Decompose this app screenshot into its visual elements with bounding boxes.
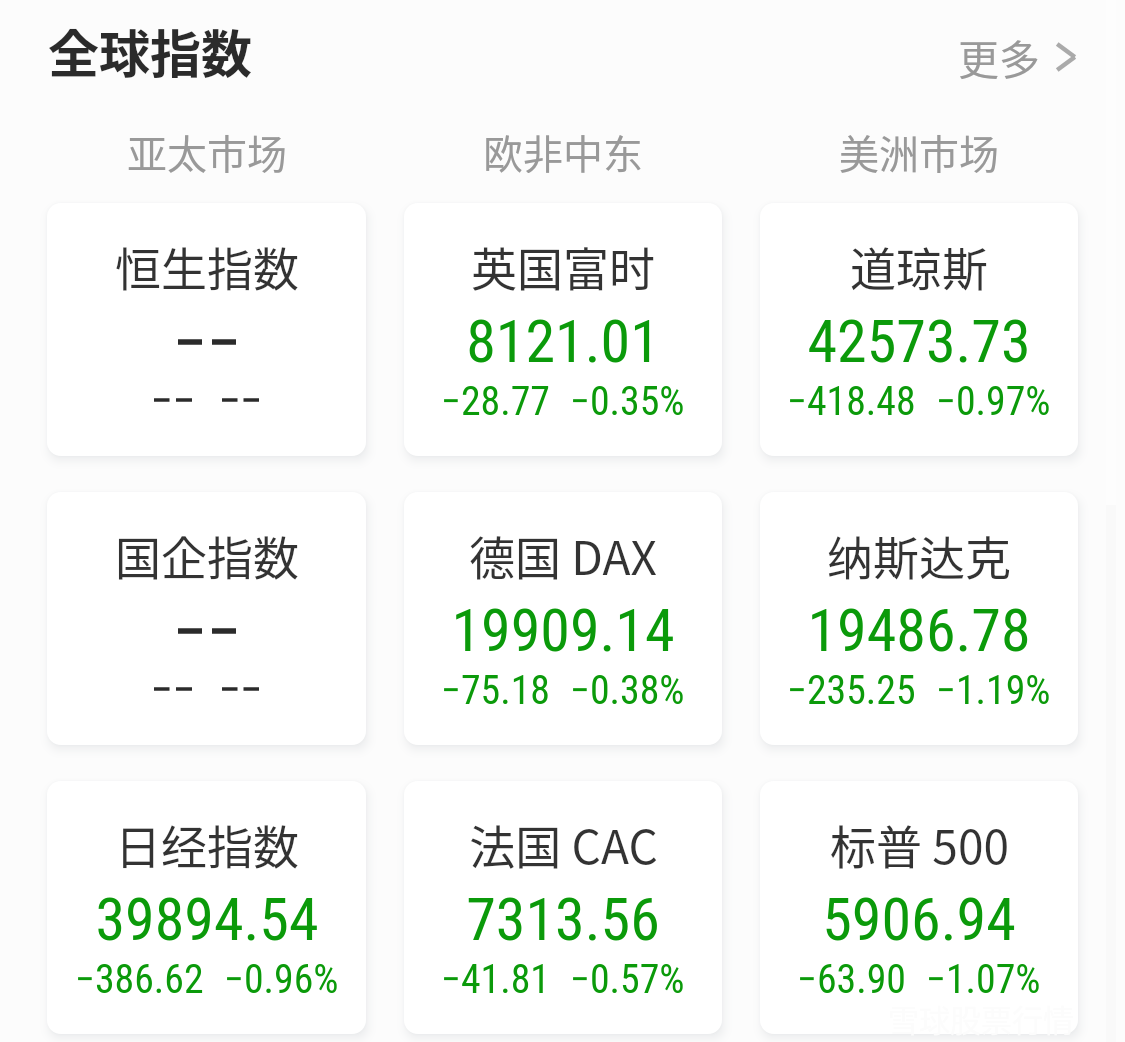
staticText: 英国富时 <box>471 233 655 300</box>
staticText: −0.35% <box>570 378 685 425</box>
staticText: 欧非中东 <box>483 123 643 173</box>
button[interactable]: 标普 500 <box>760 781 1078 1034</box>
staticText: 纳斯达克 <box>827 522 1011 589</box>
staticText: 39894.54 <box>95 884 319 954</box>
button[interactable]: 日经指数 <box>47 781 366 1034</box>
staticText: 42573.73 <box>807 306 1031 376</box>
other: More <box>1055 40 1077 74</box>
staticText: 8121.01 <box>466 306 660 376</box>
staticText: −1.07% <box>926 956 1041 1003</box>
staticText: 法国 CAC <box>469 811 658 878</box>
button[interactable]: 英国富时 <box>404 203 722 456</box>
staticText: −75.18 <box>441 667 550 714</box>
staticText: −63.90 <box>797 956 906 1003</box>
staticText: 日经指数 <box>115 811 299 878</box>
staticText: 雪球股票行情 <box>888 996 1074 1041</box>
staticText: −418.48 <box>787 378 916 425</box>
staticText: 7313.56 <box>466 884 660 954</box>
staticText: −235.25 <box>787 667 916 714</box>
staticText: 亚太市场 <box>127 123 287 173</box>
staticText: −0.57% <box>570 956 685 1003</box>
staticText: 全球指数 <box>48 14 253 88</box>
staticText: −41.81 <box>441 956 550 1003</box>
staticText: 道琼斯 <box>850 233 988 300</box>
staticText: 19486.78 <box>807 595 1031 665</box>
staticText: 德国 DAX <box>469 522 657 589</box>
staticText: 19909.14 <box>451 595 675 665</box>
button[interactable]: 道琼斯 <box>760 203 1078 456</box>
button[interactable]: 纳斯达克 <box>760 492 1078 745</box>
button[interactable]: 美洲市场 <box>760 123 1078 173</box>
staticText: −0.97% <box>936 378 1051 425</box>
staticText: −0.96% <box>224 956 339 1003</box>
staticText: 国企指数 <box>115 522 299 589</box>
button[interactable]: 更多 <box>958 27 1077 86</box>
button[interactable]: 欧非中东 <box>404 123 722 173</box>
button[interactable]: 恒生指数 <box>47 203 366 456</box>
staticText: 恒生指数 <box>115 233 299 300</box>
button[interactable]: 亚太市场 <box>47 123 366 173</box>
button[interactable]: 全球指数 <box>48 14 253 88</box>
staticText: −1.19% <box>936 667 1051 714</box>
staticText: −386.62 <box>75 956 204 1003</box>
staticText: 标普 500 <box>830 811 1009 878</box>
staticText: 5906.94 <box>822 884 1016 954</box>
staticText: 更多 <box>958 27 1040 86</box>
staticText: 美洲市场 <box>839 123 999 173</box>
staticText: −28.77 <box>441 378 550 425</box>
button[interactable]: 德国 DAX <box>404 492 722 745</box>
button[interactable]: 法国 CAC <box>404 781 722 1034</box>
staticText: −0.38% <box>570 667 685 714</box>
button[interactable]: 国企指数 <box>47 492 366 745</box>
